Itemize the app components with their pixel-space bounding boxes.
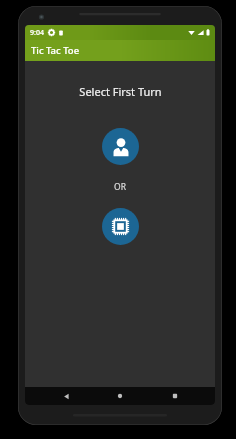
staticText: Select First Turn xyxy=(79,84,162,99)
staticText: 9:04 xyxy=(30,28,44,38)
button[interactable]: Recent apps xyxy=(161,387,189,405)
button[interactable]: Back xyxy=(52,387,80,405)
button[interactable]: Player first xyxy=(102,128,139,165)
staticText: OR xyxy=(114,181,126,193)
staticText: Tic Tac Toe xyxy=(31,44,80,57)
button[interactable]: Computer first xyxy=(102,208,139,245)
button[interactable]: Home xyxy=(106,387,134,405)
